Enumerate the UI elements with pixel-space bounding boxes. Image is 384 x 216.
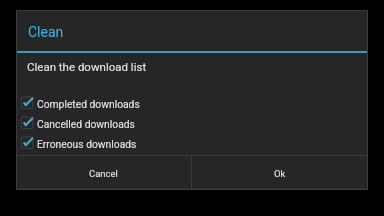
staticText: Erroneous downloads <box>37 138 137 150</box>
staticText: Cancel <box>89 168 118 179</box>
button[interactable]: Erroneous downloads <box>16 133 368 153</box>
staticText: Completed downloads <box>37 98 140 110</box>
button[interactable]: Completed downloads <box>16 93 368 113</box>
button[interactable]: Cancelled downloads <box>16 113 368 133</box>
staticText: Cancelled downloads <box>37 118 135 130</box>
staticText: Ok <box>274 168 286 179</box>
staticText: Clean the download list <box>27 60 147 73</box>
button[interactable]: Ok <box>192 156 368 188</box>
staticText: Clean <box>28 24 64 40</box>
button[interactable]: Cancel <box>16 156 191 188</box>
